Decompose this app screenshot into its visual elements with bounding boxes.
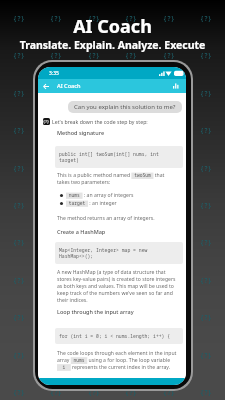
staticText: {?} — [50, 89, 62, 98]
staticText: {?} — [125, 276, 137, 285]
staticText: {?} — [13, 351, 25, 360]
staticText: Create a HashMap — [57, 228, 106, 235]
staticText: {?} — [125, 388, 137, 397]
staticText: Loop through the input array — [57, 308, 134, 315]
staticText: {?} — [88, 164, 100, 173]
staticText: {?} — [88, 351, 100, 360]
staticText: target : an integer — [66, 200, 117, 207]
staticText: 3:35 — [49, 70, 59, 77]
staticText: {?} — [88, 126, 100, 135]
staticText: {?} — [200, 351, 212, 360]
staticText: {?} — [125, 164, 137, 173]
staticText: {?} — [50, 276, 62, 285]
staticText: {?} — [200, 238, 212, 247]
staticText: {?} — [13, 313, 25, 322]
staticText: {?} — [163, 351, 175, 360]
staticText: {?} — [200, 164, 212, 173]
staticText: {?} — [88, 51, 100, 60]
staticText: {?} — [200, 51, 212, 60]
staticText: {?} — [88, 388, 100, 397]
staticText: {?} — [88, 238, 100, 247]
staticText: nums : an array of integers — [66, 192, 134, 199]
staticText: AI Coach — [57, 82, 81, 90]
staticText: Map<Integer, Integer> map = new HashMap<… — [59, 247, 148, 259]
staticText: {?} — [163, 89, 175, 98]
staticText: {?} — [13, 388, 25, 397]
staticText: {?} — [50, 388, 62, 397]
staticText: {?} — [163, 164, 175, 173]
staticText: {?} — [88, 89, 100, 98]
staticText: {?} — [125, 51, 137, 60]
staticText: for (int i = 0; i < nums.length; i++) { — [59, 333, 171, 339]
staticText: {?} — [50, 126, 62, 135]
staticText: {?} — [125, 89, 137, 98]
staticText: {?} — [50, 164, 62, 173]
staticText: {?} — [125, 351, 137, 360]
staticText: {?} — [50, 238, 62, 247]
staticText: {?} — [200, 89, 212, 98]
staticText: {?} — [13, 164, 25, 173]
staticText: public int[] twoSum(int[] nums, int targ… — [59, 151, 159, 163]
staticText: Translate. Explain. Analyze. Execute — [0, 38, 225, 52]
staticText: {?} — [13, 89, 25, 98]
staticText: {?} — [13, 126, 25, 135]
staticText: {?} — [50, 51, 62, 60]
staticText: {?} — [13, 238, 25, 247]
staticText: AI Coach — [0, 14, 225, 39]
staticText: {?} — [88, 201, 100, 210]
staticText: {?} — [163, 276, 175, 285]
staticText: {?} — [50, 14, 62, 23]
button[interactable]: Can you explain this solution to me? — [68, 101, 182, 113]
staticText: Method signature — [57, 129, 105, 136]
staticText: {?} — [50, 351, 62, 360]
staticText: A new HashMap (a type of data structure … — [57, 269, 176, 304]
staticText: The method returns an array of integers. — [57, 215, 155, 222]
staticText: The code loops through each element in t… — [57, 350, 177, 371]
staticText: Can you explain this solution to me? — [74, 103, 176, 111]
staticText: {?} — [200, 126, 212, 135]
staticText: {?} — [125, 313, 137, 322]
staticText: {?} — [50, 201, 62, 210]
staticText: {?} — [88, 313, 100, 322]
staticText: {?} — [88, 14, 100, 23]
staticText: {?} — [163, 14, 175, 23]
staticText: {?} — [13, 201, 25, 210]
staticText: {?} — [200, 201, 212, 210]
staticText: {?} — [43, 119, 50, 124]
staticText: {?} — [163, 388, 175, 397]
staticText: This is a public method named twoSum tha… — [57, 172, 165, 186]
staticText: {?} — [200, 388, 212, 397]
staticText: {?} — [200, 276, 212, 285]
staticText: Let's break down the code step by step: — [52, 118, 148, 125]
staticText: {?} — [200, 313, 212, 322]
staticText: {?} — [125, 14, 137, 23]
staticText: {?} — [13, 51, 25, 60]
button[interactable]: Statistics — [171, 81, 181, 91]
staticText: {?} — [200, 14, 212, 23]
staticText: {?} — [163, 238, 175, 247]
staticText: {?} — [13, 276, 25, 285]
staticText: {?} — [50, 313, 62, 322]
staticText: {?} — [13, 14, 25, 23]
staticText: {?} — [88, 276, 100, 285]
staticText: {?} — [125, 238, 137, 247]
button[interactable]: Back — [41, 81, 51, 91]
staticText: {?} — [163, 51, 175, 60]
